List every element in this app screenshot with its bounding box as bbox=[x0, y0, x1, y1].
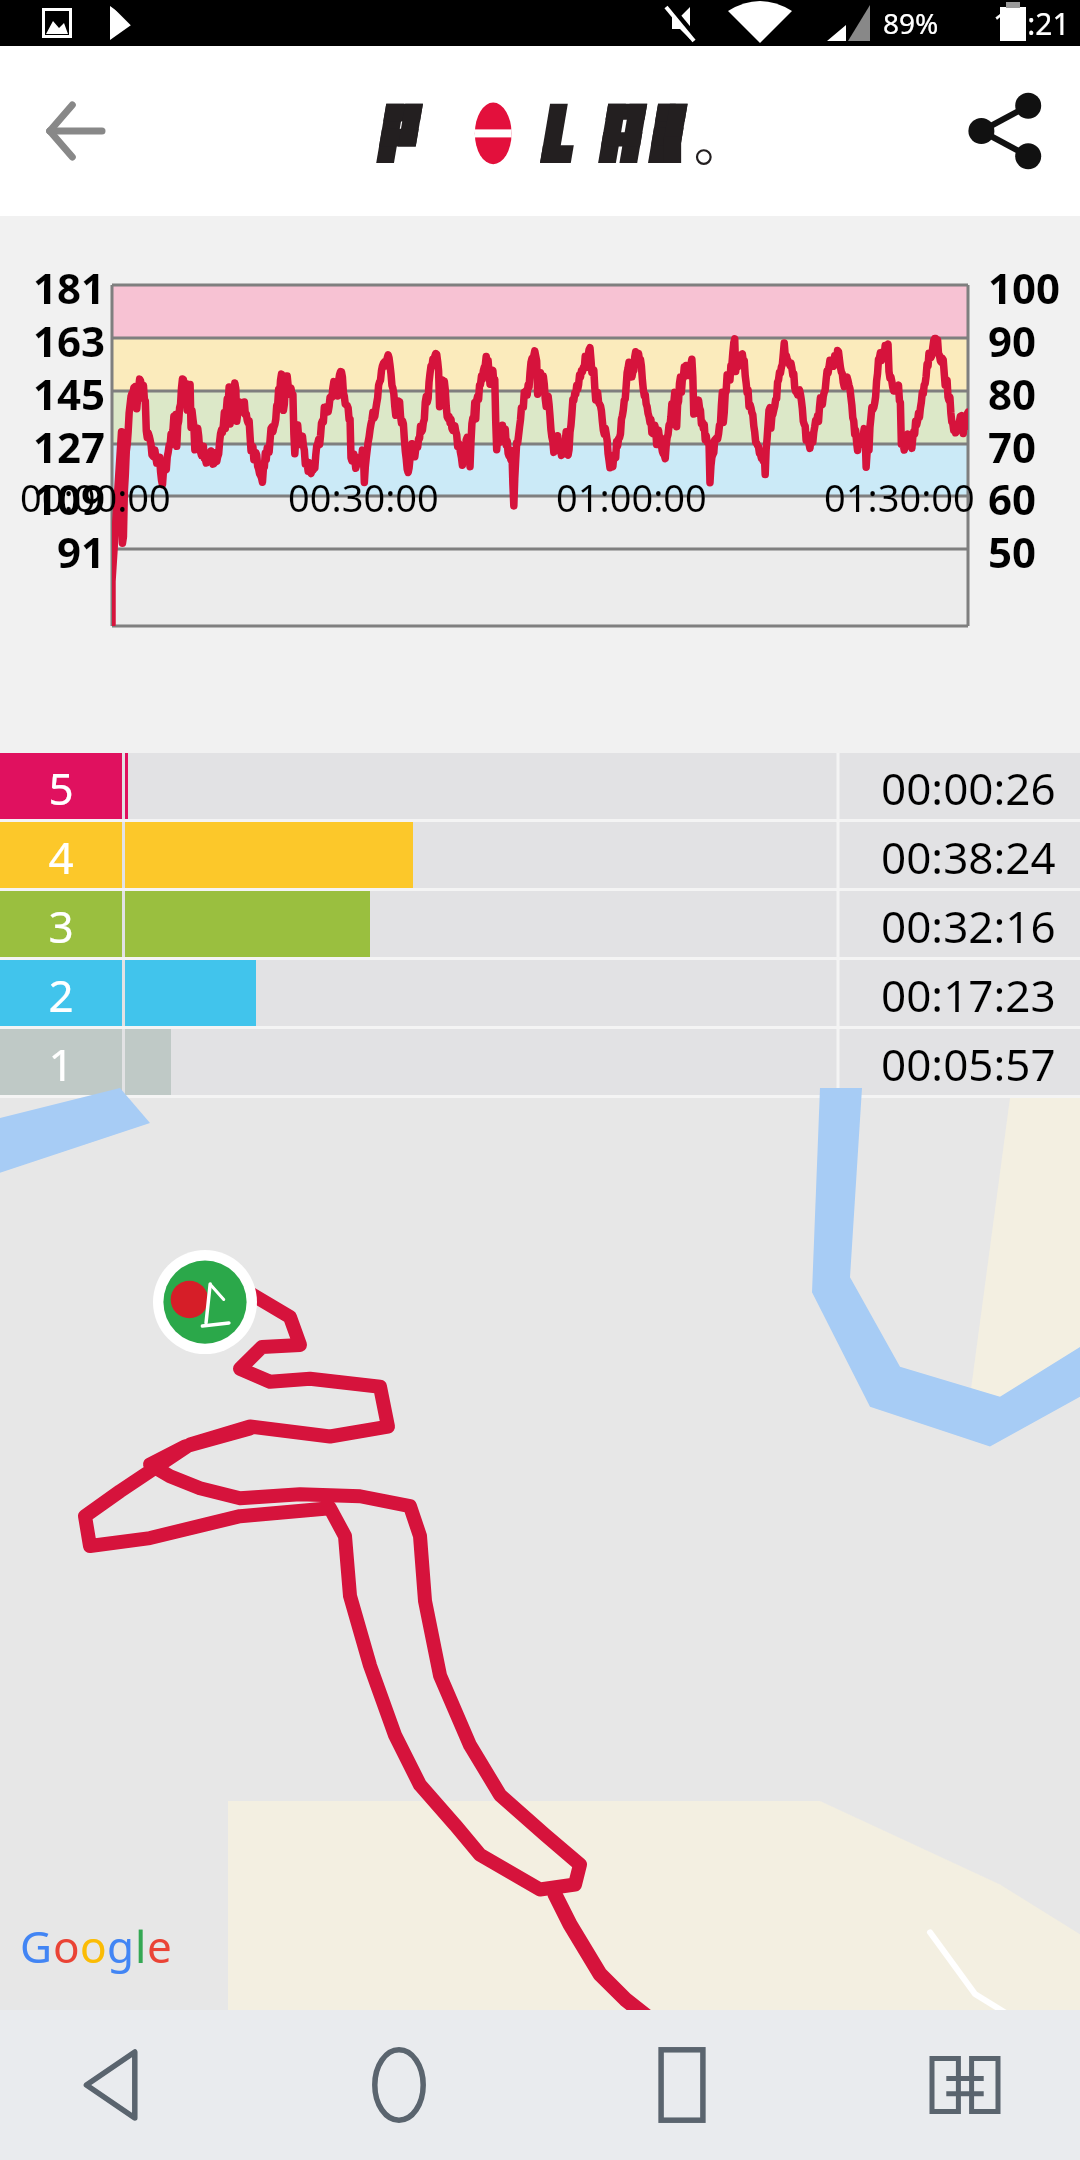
button[interactable]: Share bbox=[958, 86, 1048, 176]
staticText: 89% bbox=[883, 4, 939, 42]
button[interactable]: Route map bbox=[0, 1098, 1080, 2010]
button[interactable]: 1 bbox=[0, 1029, 1080, 1098]
staticText: 00:32:16 bbox=[881, 896, 1056, 956]
staticText: 01:30:00 bbox=[824, 471, 975, 523]
staticText: 1 bbox=[0, 1034, 122, 1094]
staticText: 163 bbox=[0, 312, 105, 369]
button[interactable]: Back bbox=[30, 86, 120, 176]
staticText: 181 bbox=[0, 259, 105, 316]
staticText: 145 bbox=[0, 365, 105, 422]
staticText: 00:30:00 bbox=[288, 471, 439, 523]
staticText: 3 bbox=[0, 896, 122, 956]
staticText: 00:00:26 bbox=[881, 758, 1056, 818]
staticText: 70 bbox=[988, 418, 1037, 475]
staticText: 91 bbox=[0, 523, 105, 580]
staticText: 00:00:00 bbox=[20, 471, 171, 523]
staticText: 4 bbox=[0, 827, 122, 887]
staticText: 00:17:23 bbox=[881, 965, 1056, 1025]
button[interactable]: 5 bbox=[0, 753, 1080, 822]
staticText: G bbox=[20, 1916, 53, 1976]
staticText: 2 bbox=[0, 965, 122, 1025]
button[interactable]: Recents bbox=[627, 2030, 737, 2140]
button[interactable]: 4 bbox=[0, 822, 1080, 891]
staticText: 90 bbox=[988, 312, 1037, 369]
staticText: 01:00:00 bbox=[556, 471, 707, 523]
staticText: 19:21 bbox=[993, 3, 1070, 44]
staticText: o bbox=[53, 1916, 80, 1976]
staticText: 127 bbox=[0, 418, 105, 475]
staticText: 50 bbox=[988, 523, 1037, 580]
staticText: 80 bbox=[988, 365, 1037, 422]
staticText: g bbox=[107, 1916, 135, 1976]
staticText: 60 bbox=[988, 470, 1037, 527]
button[interactable]: 2 bbox=[0, 960, 1080, 1029]
button[interactable]: Back bbox=[60, 2030, 170, 2140]
staticText: l bbox=[135, 1916, 147, 1976]
button[interactable]: Home bbox=[344, 2030, 454, 2140]
button[interactable]: Switch app bbox=[910, 2030, 1020, 2140]
staticText: 109 bbox=[0, 470, 105, 527]
staticText: 100 bbox=[988, 259, 1061, 316]
staticText: 5 bbox=[0, 758, 122, 818]
staticText: 00:05:57 bbox=[881, 1034, 1056, 1094]
button[interactable]: 3 bbox=[0, 891, 1080, 960]
staticText: o bbox=[80, 1916, 107, 1976]
staticText: 00:38:24 bbox=[881, 827, 1056, 887]
staticText: e bbox=[147, 1916, 172, 1976]
